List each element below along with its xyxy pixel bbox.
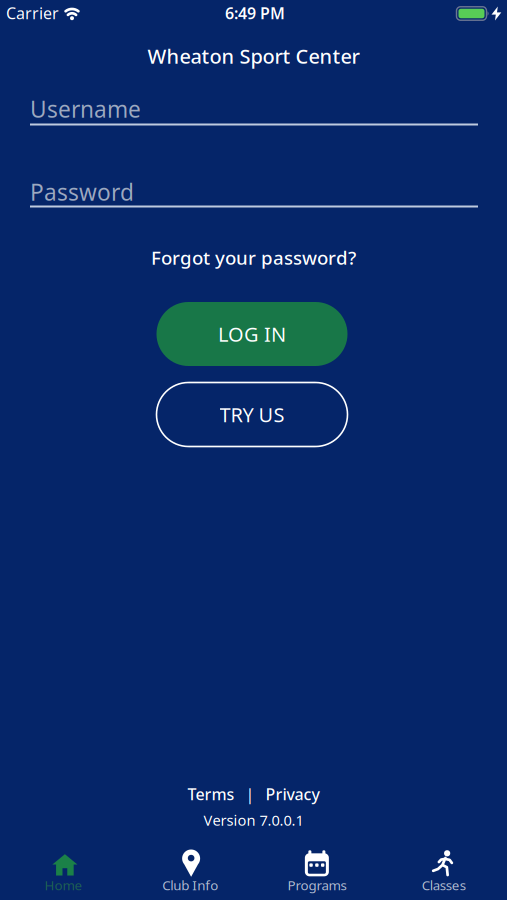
button[interactable]: Password [0, 0, 507, 900]
staticText: Carrier [6, 2, 59, 24]
staticText: Username [30, 94, 141, 124]
staticText: Forgot your password? [151, 245, 356, 270]
staticText: Classes [422, 876, 466, 894]
button[interactable]: Terms [187, 782, 234, 806]
staticText: 6:49 PM [225, 2, 285, 24]
staticText: Password [30, 177, 134, 207]
staticText: Wheaton Sport Center [147, 43, 359, 69]
button[interactable]: Home [0, 840, 127, 900]
staticText: | [245, 783, 254, 805]
button[interactable]: Club Info [127, 840, 254, 900]
button[interactable]: LOG IN [156, 302, 347, 366]
staticText: TRY US [219, 401, 284, 428]
button[interactable]: Programs [253, 840, 380, 900]
button[interactable]: Privacy [265, 782, 319, 806]
staticText: Version 7.0.0.1 [203, 810, 303, 830]
staticText: Programs [287, 876, 346, 894]
staticText: LOG IN [218, 321, 286, 347]
button[interactable]: TRY US [156, 382, 347, 446]
staticText: Home [44, 876, 82, 894]
button[interactable]: Classes [380, 840, 507, 900]
staticText: Privacy [265, 783, 319, 805]
button[interactable]: Forgot your password? [103, 244, 403, 270]
staticText: Club Info [162, 876, 218, 894]
staticText: Terms [187, 783, 234, 805]
button[interactable]: Username [0, 0, 507, 900]
